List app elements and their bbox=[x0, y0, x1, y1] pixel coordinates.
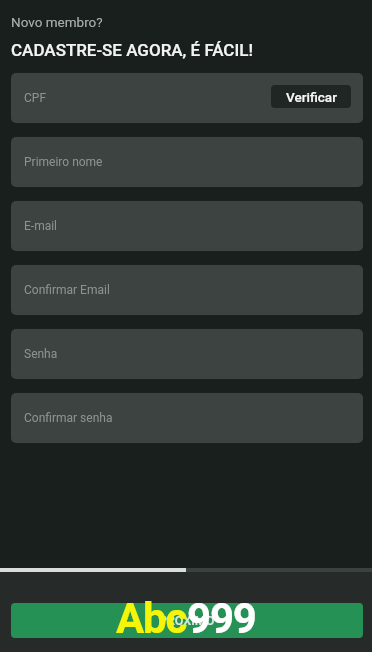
staticText: Abc bbox=[116, 594, 187, 643]
staticText: CPF bbox=[24, 91, 47, 105]
staticText: Confirmar senha bbox=[24, 411, 113, 425]
staticText: Novo membro? bbox=[11, 14, 103, 30]
button[interactable]: CPF bbox=[11, 73, 363, 123]
button[interactable]: Senha bbox=[11, 329, 363, 379]
button[interactable]: E-mail bbox=[11, 201, 363, 251]
button[interactable]: Primeiro nome bbox=[11, 137, 363, 187]
button[interactable]: Verificar bbox=[271, 85, 351, 108]
staticText: 999 bbox=[187, 594, 256, 643]
staticText: Verificar bbox=[286, 89, 337, 105]
staticText: PRÓXIMO bbox=[159, 613, 215, 628]
staticText: E-mail bbox=[24, 219, 58, 233]
staticText: Primeiro nome bbox=[24, 155, 103, 169]
staticText: CADASTRE-SE AGORA, É FÁCIL! bbox=[11, 40, 253, 60]
button[interactable]: PRÓXIMO bbox=[11, 603, 363, 638]
staticText: Senha bbox=[24, 347, 58, 361]
staticText: Confirmar Email bbox=[24, 283, 110, 297]
button[interactable]: Confirmar senha bbox=[11, 393, 363, 443]
other: Progresso do cadastro bbox=[0, 568, 372, 572]
button[interactable]: Confirmar Email bbox=[11, 265, 363, 315]
